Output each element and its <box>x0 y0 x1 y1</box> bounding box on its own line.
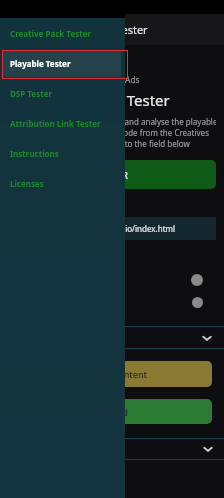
staticText: Load Ad <box>93 406 128 418</box>
button[interactable]: Toggle option one <box>191 274 203 286</box>
button[interactable]: Playable Tester <box>0 48 125 78</box>
button[interactable]: Licenses <box>0 168 125 198</box>
staticText: Vungle Ads <box>95 74 140 86</box>
staticText: Instructions <box>10 148 59 159</box>
staticText: DSP Tester <box>10 88 52 99</box>
staticText: Licenses <box>10 178 44 189</box>
staticText: Load a playable ad from the server and a… <box>0 116 216 127</box>
staticText: ad code from the Creatives <box>108 127 209 138</box>
button[interactable]: Instructions <box>0 138 125 168</box>
button[interactable]: Load Ad <box>8 399 212 424</box>
button[interactable]: Creative Pack Tester <box>0 18 125 48</box>
staticText: Playable Tester <box>10 58 71 69</box>
staticText: Creative Pack Tester <box>10 28 92 39</box>
button[interactable]: DSP Tester <box>0 78 125 108</box>
button[interactable]: SERVER <box>8 160 216 189</box>
button[interactable]: Expand section <box>0 327 224 348</box>
button[interactable]: Collapse section <box>0 439 224 459</box>
button[interactable]: https://vungle.io/index.html <box>8 217 216 240</box>
staticText: https://vungle.io/index.html <box>70 223 176 234</box>
staticText: Clear Ad Content <box>74 368 147 380</box>
staticText: or add it to the field below <box>91 138 190 149</box>
button[interactable]: Attribution Link Tester <box>0 108 125 138</box>
staticText: SERVER <box>96 169 128 181</box>
button[interactable]: Clear Ad Content <box>8 361 212 387</box>
staticText: Vungle Playable Tester <box>11 90 170 110</box>
staticText: Attribution Link Tester <box>10 118 101 129</box>
staticText: Playable Tester <box>70 22 148 37</box>
button[interactable]: Toggle option two <box>192 297 203 308</box>
